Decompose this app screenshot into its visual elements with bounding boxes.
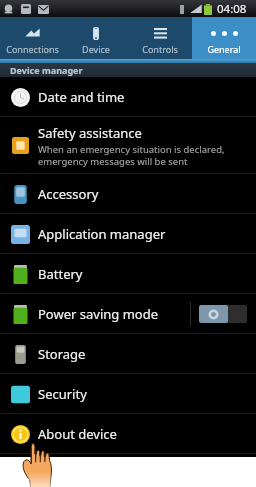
staticText: Device [82, 43, 110, 55]
button[interactable]: Power saving mode [0, 294, 256, 334]
staticText: Storage [38, 345, 86, 363]
staticText: About device [38, 425, 117, 443]
staticText: Safety assistance [38, 124, 142, 142]
staticText: Connections [6, 43, 59, 55]
staticText: Device manager [10, 64, 83, 76]
button[interactable]: Battery [0, 254, 256, 294]
staticText: General [207, 43, 241, 55]
staticText: When an emergency situation is declared,… [38, 143, 225, 167]
button[interactable]: Safety assistance [0, 117, 256, 174]
staticText: Application manager [38, 225, 166, 243]
button[interactable]: Application manager [0, 214, 256, 254]
button[interactable]: Storage [0, 334, 256, 374]
button[interactable]: Power saving mode toggle [199, 305, 247, 323]
staticText: Accessory [38, 185, 99, 203]
staticText: Battery [38, 265, 83, 283]
staticText: Controls [142, 43, 178, 55]
staticText: Power saving mode [38, 305, 159, 323]
button[interactable]: General [192, 17, 256, 59]
button[interactable]: Accessory [0, 174, 256, 214]
button[interactable]: Controls [128, 17, 192, 59]
button[interactable]: About device [0, 414, 256, 454]
button[interactable]: Date and time [0, 77, 256, 117]
button[interactable]: Connections [0, 17, 64, 59]
button[interactable]: Device [64, 17, 128, 59]
button[interactable]: Security [0, 374, 256, 414]
staticText: Date and time [38, 88, 125, 106]
staticText: 04:08 [217, 1, 247, 17]
staticText: Security [38, 385, 87, 403]
